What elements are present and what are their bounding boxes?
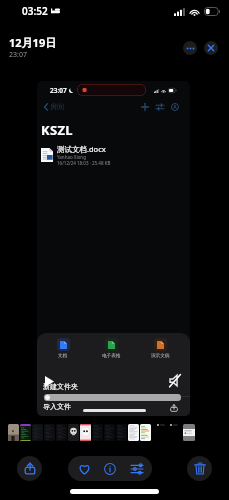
staticText: 03:52 (22, 4, 48, 18)
button[interactable] (92, 424, 103, 441)
button[interactable]: 演示文稿 (145, 338, 175, 359)
button[interactable] (104, 424, 115, 441)
button[interactable]: Adjust (126, 458, 148, 480)
button[interactable]: 房间 (44, 102, 64, 111)
button[interactable] (116, 424, 127, 441)
button[interactable]: Delete (187, 456, 212, 481)
button[interactable] (44, 424, 55, 441)
button[interactable] (20, 424, 31, 441)
button[interactable] (183, 424, 195, 441)
staticText: 12月19日 (9, 35, 57, 50)
staticText: 测试文档.docx (57, 144, 106, 154)
staticText: 电子表格 (102, 353, 121, 359)
staticText: 16/12/24 18:03 · 25.48 KB (57, 160, 111, 166)
button[interactable]: 导入文件 (37, 396, 190, 416)
button[interactable]: Favorite (73, 458, 95, 480)
staticText: 导入文件 (43, 402, 71, 411)
staticText: 新建文件夹 (43, 382, 78, 391)
button[interactable] (140, 424, 151, 441)
button[interactable] (68, 424, 79, 441)
button[interactable] (80, 424, 91, 441)
staticText: 文档 (58, 353, 68, 359)
staticText: Yanhao Xiong (57, 154, 86, 160)
button[interactable] (56, 424, 67, 441)
button[interactable] (8, 424, 19, 441)
staticText: 演示文稿 (151, 353, 170, 359)
button[interactable] (32, 424, 43, 441)
button[interactable]: 新建文件夹 (37, 376, 190, 396)
button[interactable] (128, 424, 139, 441)
button[interactable]: Share (17, 456, 42, 481)
button[interactable]: 电子表格 (96, 338, 126, 359)
button[interactable]: 文档 (48, 338, 78, 359)
button[interactable]: 测试文档.docx (37, 144, 190, 166)
button[interactable]: Account (169, 101, 180, 112)
button[interactable]: Sort options (154, 101, 165, 112)
staticText: 23:07 (9, 50, 27, 60)
button[interactable]: More options (183, 41, 197, 55)
staticText: 房间 (50, 102, 64, 111)
staticText: KSZL (41, 121, 73, 139)
button[interactable]: Play (45, 376, 54, 387)
button[interactable]: Add (139, 101, 150, 112)
staticText: 23:07 (50, 86, 67, 95)
button[interactable]: Info (99, 458, 121, 480)
button[interactable]: Close (204, 41, 218, 55)
button[interactable]: Unmute (169, 373, 182, 388)
